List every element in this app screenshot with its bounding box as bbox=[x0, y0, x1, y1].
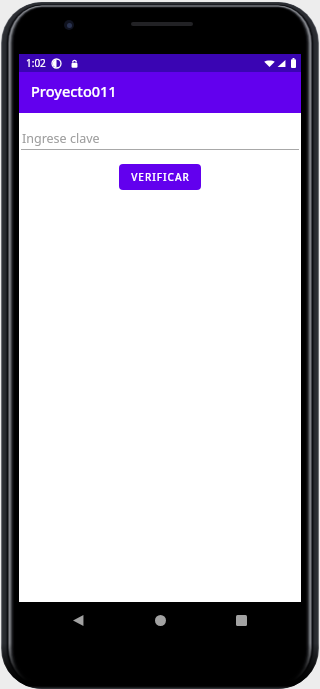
staticText: Ingrese clave bbox=[22, 130, 100, 147]
button[interactable]: VERIFICAR bbox=[119, 164, 201, 190]
button[interactable]: Recents bbox=[223, 602, 259, 638]
staticText: VERIFICAR bbox=[131, 170, 190, 184]
staticText: Proyecto011 bbox=[31, 81, 117, 101]
button[interactable]: Back bbox=[60, 602, 96, 638]
staticText: 1:02 bbox=[26, 56, 46, 70]
button[interactable]: Ingrese clave bbox=[21, 122, 299, 150]
button[interactable]: Home bbox=[142, 602, 178, 638]
